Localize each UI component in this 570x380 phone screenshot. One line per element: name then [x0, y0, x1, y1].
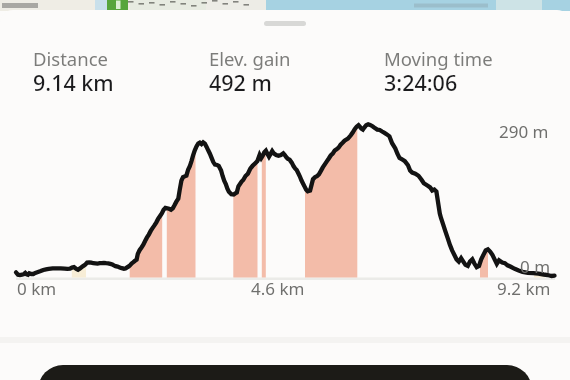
staticText: Moving time	[384, 46, 493, 71]
staticText: 0 km	[17, 277, 57, 300]
staticText: 3:24:06	[384, 68, 458, 97]
staticText: 0 m	[520, 255, 551, 278]
staticText: 9.2 km	[497, 277, 551, 300]
staticText: 290 m	[499, 120, 549, 143]
staticText: 4.6 km	[251, 277, 305, 300]
staticText: Elev. gain	[209, 46, 291, 71]
button[interactable]: Expand sheet	[264, 21, 306, 26]
staticText: Distance	[33, 46, 108, 71]
staticText: 9.14 km	[33, 68, 114, 97]
button[interactable]: Start route	[38, 365, 532, 380]
staticText: 492 m	[209, 68, 272, 97]
